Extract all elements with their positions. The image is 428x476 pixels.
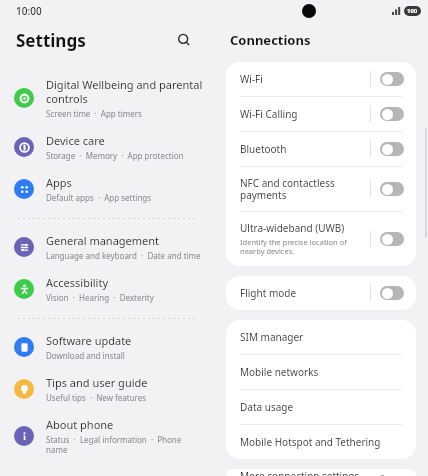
staticText: Ultra-wideband (UWB) <box>240 221 345 235</box>
button[interactable]: Wi-Fi <box>226 62 416 96</box>
button[interactable]: Search <box>170 26 198 54</box>
staticText: Default apps · App settings <box>46 192 152 203</box>
button[interactable]: Bluetooth <box>226 132 416 166</box>
button[interactable]: Wi-Fi Calling <box>226 97 416 131</box>
button[interactable]: Toggle <box>380 142 404 156</box>
button[interactable]: Flight mode <box>226 276 416 310</box>
staticText: Apps <box>46 175 72 190</box>
button[interactable]: About phone <box>0 410 214 462</box>
button[interactable]: Ultra-wideband (UWB) <box>226 212 416 266</box>
button[interactable]: Toggle <box>380 182 404 196</box>
button[interactable]: Toggle <box>380 232 404 246</box>
staticText: SIM manager <box>240 330 304 344</box>
button[interactable]: Device care <box>0 126 214 168</box>
staticText: Settings <box>16 29 170 52</box>
staticText: Screen time · App timers <box>46 108 142 119</box>
staticText: Status · Legal information · Phone name <box>46 434 204 455</box>
button[interactable]: Mobile networks <box>226 355 416 389</box>
staticText: NFC and contactless payments <box>240 176 362 202</box>
staticText: Mobile networks <box>240 365 319 379</box>
staticText: About phone <box>46 417 114 432</box>
button[interactable]: More connection settings <box>226 469 416 476</box>
button[interactable]: Digital Wellbeing and parental controls <box>0 70 214 126</box>
staticText: Wi-Fi <box>240 72 263 86</box>
button[interactable]: Toggle <box>380 286 404 300</box>
staticText: Connections <box>230 31 311 49</box>
button[interactable]: Toggle <box>380 107 404 121</box>
button[interactable]: General management <box>0 226 214 268</box>
staticText: Vision · Hearing · Dexterity <box>46 292 154 303</box>
button[interactable]: Accessibility <box>0 268 214 310</box>
staticText: Device care <box>46 133 105 148</box>
staticText: Flight mode <box>240 286 297 300</box>
staticText: Tips and user guide <box>46 375 148 390</box>
staticText: Mobile Hotspot and Tethering <box>240 435 381 449</box>
button[interactable]: Data usage <box>226 390 416 424</box>
staticText: General management <box>46 233 160 248</box>
staticText: Software update <box>46 333 132 348</box>
staticText: Storage · Memory · App protection <box>46 150 184 161</box>
button[interactable]: Toggle <box>380 72 404 86</box>
button[interactable]: Apps <box>0 168 214 210</box>
staticText: Wi-Fi Calling <box>240 107 298 121</box>
staticText: Digital Wellbeing and parental controls <box>46 77 204 106</box>
button[interactable]: Mobile Hotspot and Tethering <box>226 425 416 459</box>
staticText: Useful tips · New features <box>46 392 147 403</box>
staticText: More connection settings <box>240 469 360 476</box>
staticText: Accessibility <box>46 275 109 290</box>
staticText: 10:00 <box>16 4 42 18</box>
button[interactable]: Tips and user guide <box>0 368 214 410</box>
staticText: Bluetooth <box>240 142 287 156</box>
button[interactable]: SIM manager <box>226 320 416 354</box>
staticText: Identify the precise location of nearby … <box>240 237 362 257</box>
staticText: 100 <box>407 7 418 15</box>
staticText: Language and keyboard · Date and time <box>46 250 201 261</box>
button[interactable]: NFC and contactless payments <box>226 167 416 211</box>
staticText: Download and install <box>46 350 125 361</box>
staticText: Data usage <box>240 400 294 414</box>
button[interactable]: Software update <box>0 326 214 368</box>
